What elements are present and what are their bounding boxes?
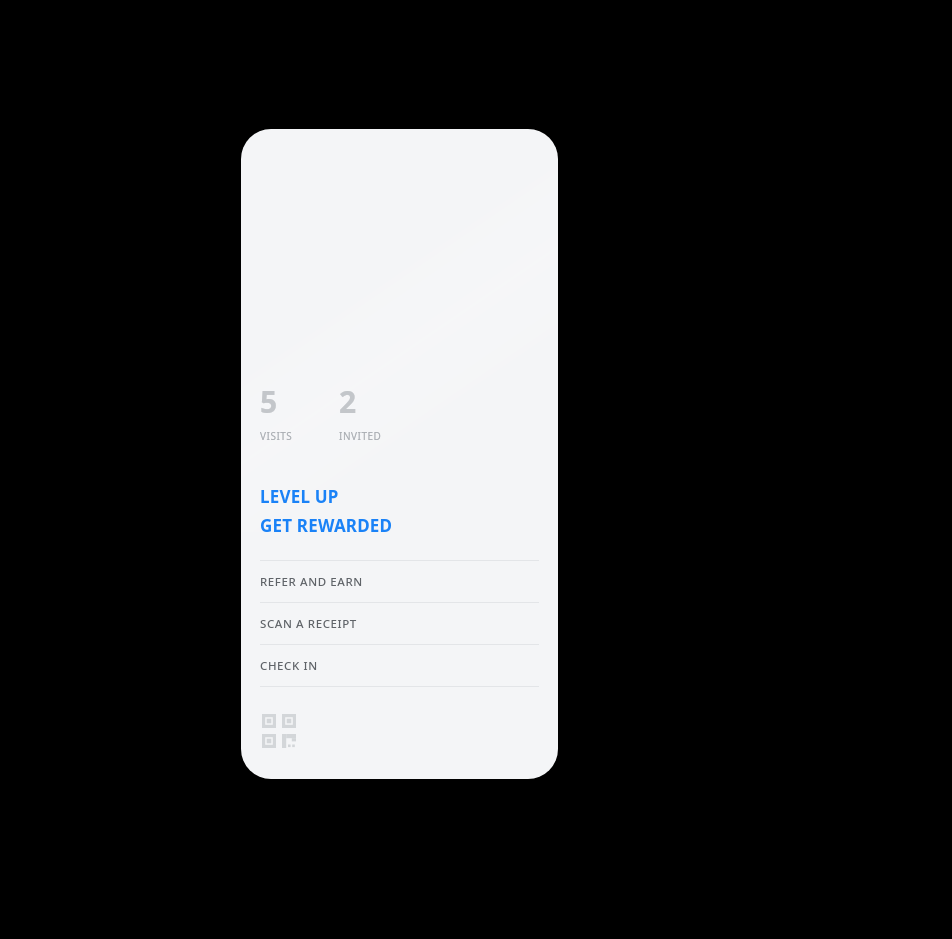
- staticText: INVITED: [339, 429, 382, 443]
- staticText: LEVEL UP: [260, 485, 339, 508]
- staticText: REFER AND EARN: [260, 574, 363, 590]
- staticText: SCAN A RECEIPT: [260, 616, 357, 632]
- staticText: CHECK IN: [260, 658, 318, 674]
- button[interactable]: SCAN A RECEIPT: [241, 603, 558, 644]
- button[interactable]: CHECK IN: [241, 645, 558, 686]
- staticText: GET REWARDED: [260, 514, 393, 537]
- staticText: 2: [339, 381, 357, 422]
- staticText: 5: [260, 381, 278, 422]
- button[interactable]: REFER AND EARN: [241, 561, 558, 602]
- staticText: VISITS: [260, 429, 293, 443]
- button[interactable]: Show QR code: [262, 714, 296, 748]
